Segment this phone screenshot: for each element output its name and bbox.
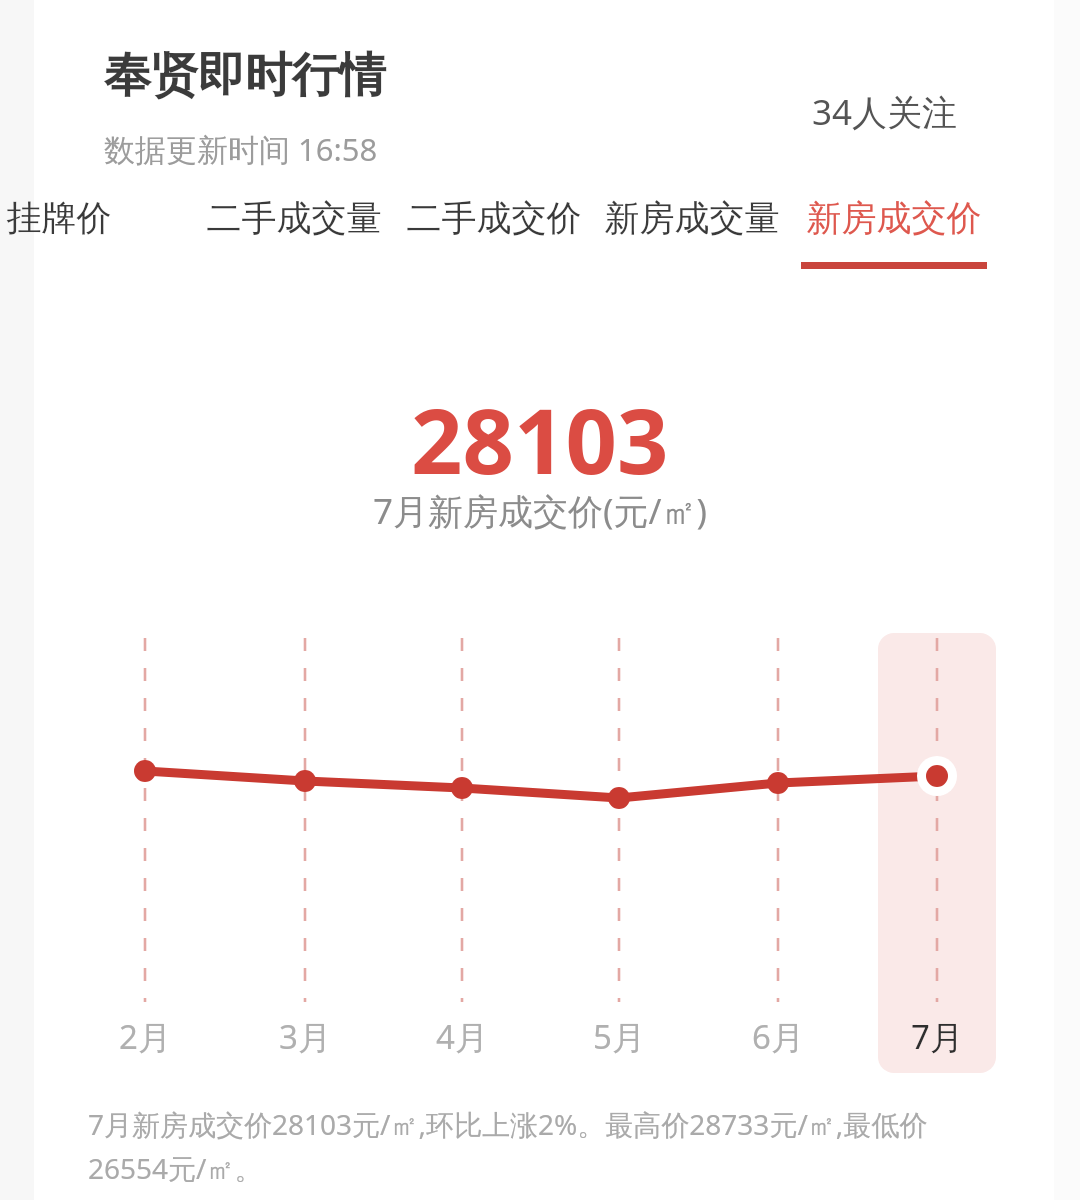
staticText: 7月 xyxy=(889,1014,985,1059)
staticText: 新房成交量 xyxy=(602,196,782,240)
staticText: 4月 xyxy=(414,1014,510,1059)
staticText: 7月新房成交价(元/㎡) xyxy=(373,487,708,535)
staticText: 新房成交价 xyxy=(801,196,987,240)
button[interactable]: 3月 xyxy=(257,1014,353,1059)
staticText: 数据更新时间 16:58 xyxy=(104,128,378,170)
staticText: 6月 xyxy=(730,1014,826,1059)
button[interactable]: 4月 xyxy=(414,1014,510,1059)
staticText: 5月 xyxy=(571,1014,667,1059)
staticText: 28103 xyxy=(411,378,669,501)
button[interactable]: 新房成交量 xyxy=(602,196,782,274)
button[interactable]: 2月 xyxy=(97,1014,193,1059)
button[interactable]: 5月 xyxy=(571,1014,667,1059)
staticText: 7月新房成交价28103元/㎡,环比上涨2%。最高价28733元/㎡,最低价26… xyxy=(88,1105,988,1187)
button[interactable]: 34人关注 xyxy=(812,88,958,136)
button[interactable]: 二手成交价 xyxy=(404,196,584,274)
button[interactable]: 6月 xyxy=(730,1014,826,1059)
staticText: 二手成交价 xyxy=(404,196,584,240)
staticText: 奉贤即时行情 xyxy=(104,46,386,105)
button[interactable]: 挂牌价 xyxy=(0,196,150,274)
button[interactable]: 新房成交价 xyxy=(801,196,987,274)
staticText: 34人关注 xyxy=(812,88,958,136)
staticText: 2月 xyxy=(97,1014,193,1059)
button[interactable]: 7月 xyxy=(889,1014,985,1059)
staticText: 二手成交量 xyxy=(204,196,384,240)
button[interactable]: 二手成交量 xyxy=(204,196,384,274)
staticText: 挂牌价 xyxy=(0,196,150,240)
staticText: 3月 xyxy=(257,1014,353,1059)
